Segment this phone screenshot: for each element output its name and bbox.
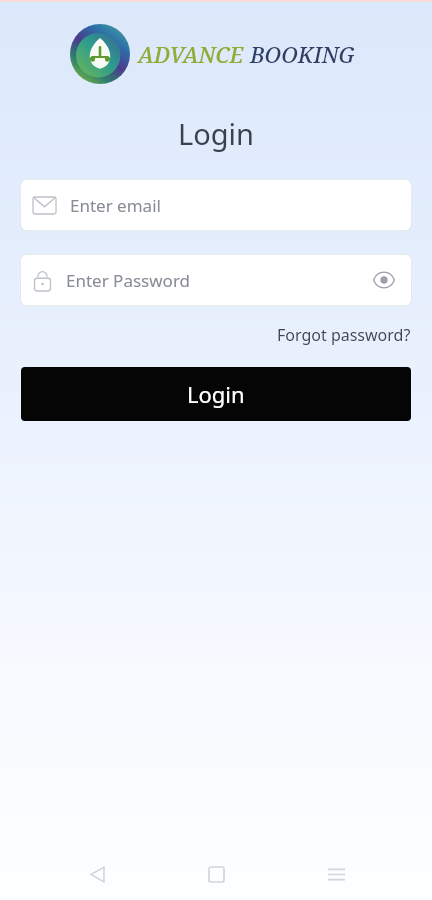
button[interactable]: Enter email <box>20 179 412 231</box>
button[interactable]: Forgot password? <box>274 320 414 350</box>
staticText: Forgot password? <box>277 324 411 346</box>
button[interactable]: Show password <box>369 265 399 295</box>
button[interactable]: Enter Password <box>20 254 412 306</box>
staticText: Enter Password <box>66 269 191 292</box>
staticText: Login <box>178 114 254 153</box>
button[interactable]: Back <box>74 851 120 897</box>
staticText: BOOKING <box>250 39 355 69</box>
button[interactable]: Login <box>21 367 411 421</box>
button[interactable]: Home <box>193 851 239 897</box>
staticText: Login <box>187 379 245 409</box>
staticText: Enter email <box>70 194 161 217</box>
staticText: ADVANCE <box>138 39 250 69</box>
button[interactable]: Recent apps <box>313 851 359 897</box>
